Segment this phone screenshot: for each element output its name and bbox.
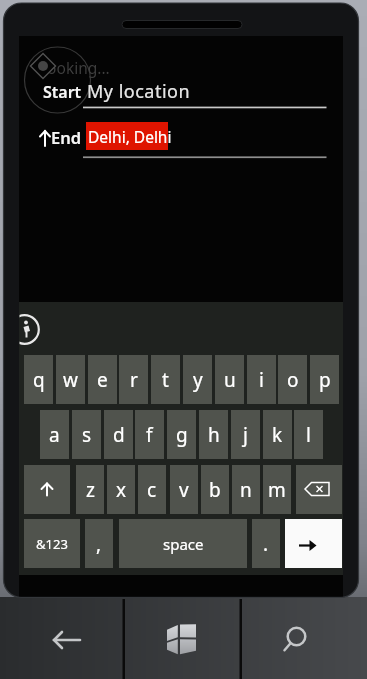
staticText: l — [306, 422, 311, 448]
button[interactable] — [243, 600, 357, 679]
button[interactable]: &123 — [24, 519, 80, 568]
staticText: o — [287, 367, 299, 393]
button[interactable]: r — [119, 355, 148, 404]
button[interactable]: h — [199, 410, 228, 459]
button[interactable] — [24, 465, 70, 514]
staticText: End — [51, 126, 82, 148]
button[interactable] — [86, 122, 168, 150]
staticText: p — [319, 367, 331, 393]
button[interactable]: c — [138, 465, 166, 514]
button[interactable] — [126, 600, 238, 679]
staticText: Looking... — [39, 57, 110, 78]
staticText: space — [163, 534, 204, 554]
staticText: &123 — [36, 535, 68, 553]
button[interactable]: k — [263, 410, 292, 459]
staticText: t — [162, 367, 169, 393]
button[interactable]: j — [231, 410, 260, 459]
staticText: c — [147, 477, 157, 503]
staticText: , — [96, 531, 102, 557]
staticText: f — [146, 422, 153, 448]
staticText: e — [97, 367, 108, 393]
button[interactable]: y — [183, 355, 212, 404]
staticText: My location — [87, 79, 191, 104]
button[interactable]: m — [263, 465, 291, 514]
staticText: . — [263, 531, 269, 557]
staticText: q — [33, 367, 45, 393]
button[interactable]: z — [76, 465, 104, 514]
button[interactable]: d — [104, 410, 133, 459]
button[interactable]: l — [294, 410, 323, 459]
staticText: j — [243, 422, 248, 448]
button[interactable]: x — [107, 465, 135, 514]
button[interactable]: o — [278, 355, 307, 404]
button[interactable] — [285, 519, 342, 568]
button[interactable] — [296, 465, 342, 514]
button[interactable]: space — [119, 519, 247, 568]
staticText: d — [113, 422, 125, 448]
button[interactable] — [83, 120, 326, 159]
button[interactable]: i — [247, 355, 276, 404]
button[interactable] — [19, 315, 40, 344]
button[interactable]: e — [88, 355, 117, 404]
button[interactable]: s — [72, 410, 101, 459]
button[interactable]: w — [56, 355, 85, 404]
button[interactable]: . — [252, 519, 280, 568]
staticText: w — [63, 367, 78, 393]
button[interactable]: v — [170, 465, 198, 514]
staticText: Delhi, Delhi — [88, 126, 172, 147]
button[interactable]: u — [215, 355, 244, 404]
button[interactable]: f — [135, 410, 164, 459]
button[interactable]: n — [232, 465, 260, 514]
button[interactable]: b — [201, 465, 229, 514]
staticText: g — [176, 422, 188, 448]
staticText: v — [179, 477, 189, 503]
staticText: a — [49, 422, 60, 448]
staticText: x — [116, 477, 127, 503]
button[interactable]: t — [151, 355, 180, 404]
button[interactable]: p — [310, 355, 339, 404]
button[interactable] — [83, 76, 326, 109]
staticText: b — [209, 477, 221, 503]
button[interactable]: q — [24, 355, 53, 404]
staticText: k — [272, 422, 283, 448]
staticText: u — [224, 367, 236, 393]
staticText: Start — [43, 81, 82, 103]
staticText: s — [82, 422, 92, 448]
staticText: h — [208, 422, 220, 448]
button[interactable]: g — [167, 410, 196, 459]
staticText: r — [130, 367, 138, 393]
button[interactable] — [4, 600, 122, 679]
staticText: y — [193, 367, 203, 393]
button[interactable]: a — [40, 410, 69, 459]
staticText: i — [259, 367, 264, 393]
staticText: m — [268, 477, 286, 503]
staticText: z — [86, 477, 95, 503]
staticText: n — [240, 477, 252, 503]
button[interactable]: , — [85, 519, 113, 568]
